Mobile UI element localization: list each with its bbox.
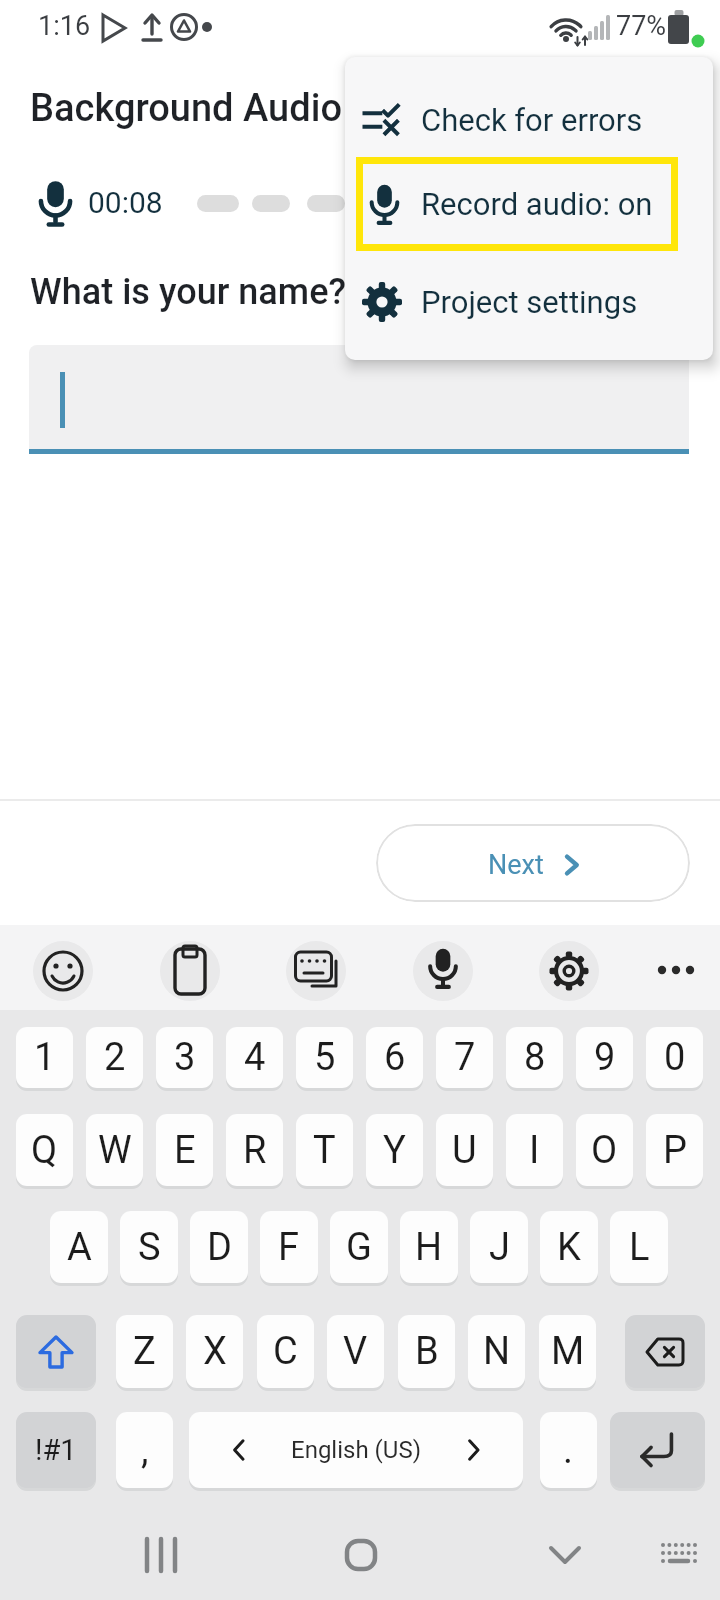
button[interactable]: Z [116, 1315, 173, 1388]
button[interactable]: K [540, 1211, 598, 1283]
button[interactable]: D [190, 1211, 248, 1283]
staticText: 3 [174, 1035, 196, 1080]
staticText: 5 [314, 1035, 336, 1080]
staticText: Y [383, 1128, 406, 1173]
button[interactable]: R [226, 1114, 283, 1186]
button[interactable] [160, 941, 220, 1001]
staticText: K [557, 1225, 581, 1270]
button[interactable]: , [116, 1412, 173, 1488]
button[interactable]: M [539, 1315, 596, 1388]
staticText: 1:16 [38, 10, 91, 42]
staticText: B [415, 1329, 439, 1374]
staticText: !#1 [35, 1433, 77, 1467]
button[interactable]: 1 [16, 1027, 73, 1088]
button[interactable]: P [646, 1114, 703, 1186]
button[interactable]: . [540, 1412, 597, 1488]
button[interactable]: 3 [156, 1027, 213, 1088]
staticText: N [483, 1329, 511, 1374]
staticText: S [138, 1225, 161, 1270]
staticText: 0 [664, 1035, 686, 1080]
staticText: P [663, 1128, 687, 1173]
button[interactable]: O [576, 1114, 633, 1186]
button[interactable]: B [398, 1315, 455, 1388]
staticText: Next [488, 849, 544, 881]
button[interactable]: Record audio: on [345, 176, 713, 232]
staticText: C [273, 1329, 298, 1374]
staticText: J [489, 1225, 510, 1270]
staticText: M [551, 1329, 585, 1374]
button[interactable]: U [436, 1114, 493, 1186]
staticText: T [313, 1128, 336, 1173]
button[interactable]: 0 [646, 1027, 703, 1088]
button[interactable]: X [186, 1315, 243, 1388]
staticText: U [452, 1128, 477, 1173]
staticText: D [207, 1225, 232, 1270]
staticText: O [591, 1128, 618, 1173]
staticText: Q [31, 1128, 58, 1173]
button[interactable]: Project settings [345, 274, 713, 330]
staticText: Record audio: on [421, 186, 653, 222]
button[interactable]: A [50, 1211, 108, 1283]
staticText: E [174, 1128, 196, 1173]
button[interactable]: E [156, 1114, 213, 1186]
staticText: 4 [244, 1035, 266, 1080]
button[interactable]: English (US) [189, 1412, 523, 1488]
button[interactable]: N [468, 1315, 525, 1388]
staticText: Z [133, 1329, 156, 1374]
button[interactable]: F [260, 1211, 318, 1283]
staticText: X [203, 1329, 227, 1374]
staticText: Background Audio [30, 86, 343, 131]
button[interactable]: !#1 [16, 1412, 96, 1488]
button[interactable] [610, 1412, 705, 1488]
staticText: W [98, 1128, 132, 1173]
button[interactable]: G [330, 1211, 388, 1283]
button[interactable] [413, 941, 473, 1001]
button[interactable]: 7 [436, 1027, 493, 1088]
button[interactable]: 9 [576, 1027, 633, 1088]
staticText: Project settings [421, 284, 638, 320]
staticText: R [243, 1128, 267, 1173]
button[interactable] [16, 1315, 96, 1388]
button[interactable]: 2 [86, 1027, 143, 1088]
staticText: 2 [104, 1035, 126, 1080]
staticText: 9 [594, 1035, 616, 1080]
staticText: H [415, 1225, 443, 1270]
staticText: A [67, 1225, 92, 1270]
staticText: 8 [524, 1035, 546, 1080]
staticText: 77% [616, 10, 667, 42]
button[interactable]: 6 [366, 1027, 423, 1088]
button[interactable] [33, 941, 93, 1001]
button[interactable]: T [296, 1114, 353, 1186]
button[interactable] [625, 1315, 705, 1388]
button[interactable]: 8 [506, 1027, 563, 1088]
button[interactable]: Y [366, 1114, 423, 1186]
staticText: G [346, 1225, 372, 1270]
button[interactable]: C [257, 1315, 314, 1388]
button[interactable]: S [120, 1211, 178, 1283]
button[interactable] [539, 941, 599, 1001]
button[interactable]: Q [16, 1114, 73, 1186]
button[interactable] [330, 1524, 392, 1586]
staticText: 1 [34, 1035, 56, 1080]
staticText: What is your name? [30, 271, 346, 313]
button[interactable]: 5 [296, 1027, 353, 1088]
button[interactable] [29, 345, 689, 449]
button[interactable]: H [400, 1211, 458, 1283]
button[interactable]: V [327, 1315, 384, 1388]
button[interactable]: Check for errors [345, 92, 713, 148]
button[interactable]: I [506, 1114, 563, 1186]
button[interactable] [534, 1524, 596, 1586]
button[interactable]: W [86, 1114, 143, 1186]
button[interactable]: L [610, 1211, 668, 1283]
staticText: . [563, 1428, 574, 1473]
staticText: V [343, 1329, 368, 1374]
button[interactable] [648, 1524, 710, 1586]
button[interactable]: J [470, 1211, 528, 1283]
button[interactable]: 4 [226, 1027, 283, 1088]
button[interactable]: Next [376, 824, 690, 902]
staticText: 00:08 [88, 185, 163, 220]
staticText: 6 [384, 1035, 406, 1080]
button[interactable] [130, 1524, 192, 1586]
button[interactable] [286, 941, 346, 1001]
staticText: , [141, 1428, 149, 1473]
